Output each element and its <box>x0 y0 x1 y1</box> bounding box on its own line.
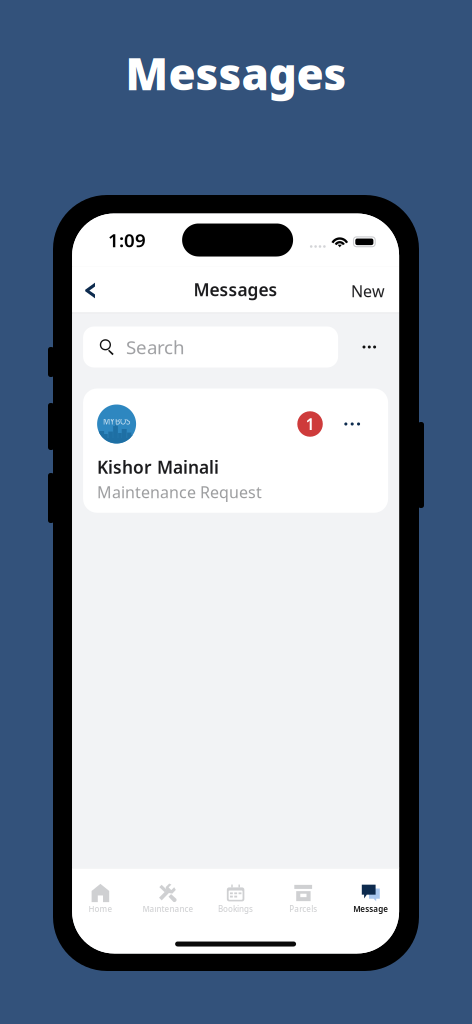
button[interactable]: Maintenance <box>134 883 202 923</box>
button[interactable]: Search <box>83 326 338 367</box>
staticText: Parcels <box>289 903 317 914</box>
staticText: Maintenance Request <box>97 481 262 503</box>
staticText: MYBOS <box>103 416 130 427</box>
staticText: Messages <box>194 278 278 301</box>
button[interactable]: More options <box>350 327 388 366</box>
staticText: Kishor Mainali <box>97 455 219 478</box>
staticText: New <box>351 280 385 302</box>
staticText: 1:09 <box>108 228 146 252</box>
button[interactable]: Message <box>337 883 405 923</box>
staticText: Message <box>353 903 388 914</box>
staticText: Home <box>88 903 112 914</box>
button[interactable]: Back <box>72 270 109 309</box>
staticText: Bookings <box>218 903 253 914</box>
button[interactable]: Bookings <box>202 883 269 923</box>
button[interactable]: MYBOS <box>83 388 388 513</box>
button[interactable]: Parcels <box>269 883 337 923</box>
button[interactable]: New <box>337 266 399 313</box>
button[interactable]: Home <box>67 883 134 923</box>
staticText: 1 <box>305 413 314 435</box>
staticText: Search <box>126 335 185 359</box>
staticText: Messages <box>125 44 346 102</box>
staticText: Maintenance <box>142 903 193 914</box>
